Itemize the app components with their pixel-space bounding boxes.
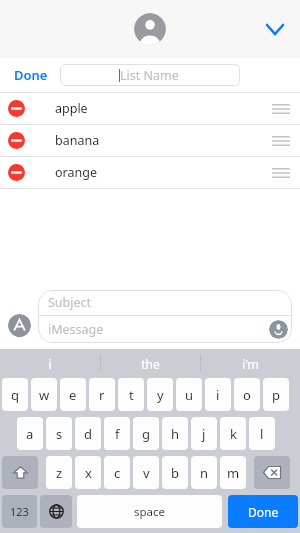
- staticText: the: [141, 356, 160, 372]
- button[interactable]: the: [101, 349, 200, 378]
- button[interactable]: z: [46, 456, 72, 489]
- button[interactable]: p: [263, 378, 289, 411]
- staticText: u: [185, 386, 194, 404]
- button[interactable]: l: [249, 417, 275, 450]
- button[interactable]: Apps: [8, 314, 31, 337]
- button[interactable]: Backspace: [254, 456, 290, 489]
- staticText: 123: [10, 504, 29, 519]
- button[interactable]: Shift: [2, 456, 38, 489]
- staticText: i: [216, 386, 220, 404]
- button[interactable]: Subject: [38, 290, 292, 343]
- button[interactable]: q: [2, 378, 28, 411]
- staticText: e: [69, 386, 77, 404]
- button[interactable]: o: [234, 378, 260, 411]
- staticText: i: [48, 356, 52, 372]
- button[interactable]: Change keyboard: [40, 495, 72, 528]
- button[interactable]: 123: [2, 495, 37, 528]
- other: Reorder orange: [272, 166, 290, 180]
- button[interactable]: m: [220, 456, 246, 489]
- button[interactable]: d: [75, 417, 101, 450]
- staticText: z: [56, 464, 63, 482]
- staticText: d: [84, 425, 92, 443]
- button[interactable]: Collapse: [262, 16, 288, 42]
- staticText: j: [202, 425, 206, 443]
- button[interactable]: space: [77, 495, 222, 528]
- staticText: Done: [248, 504, 279, 520]
- staticText: k: [230, 425, 237, 443]
- button[interactable]: i: [205, 378, 231, 411]
- button[interactable]: Delete banana: [0, 125, 300, 156]
- button[interactable]: Delete apple: [8, 100, 25, 117]
- staticText: q: [11, 386, 19, 404]
- button[interactable]: Delete apple: [0, 93, 300, 124]
- staticText: m: [227, 464, 240, 482]
- button[interactable]: Dictate: [269, 320, 288, 339]
- staticText: n: [200, 464, 209, 482]
- button[interactable]: a: [17, 417, 43, 450]
- button[interactable]: g: [133, 417, 159, 450]
- button[interactable]: k: [220, 417, 246, 450]
- staticText: t: [129, 386, 134, 404]
- button[interactable]: v: [133, 456, 159, 489]
- staticText: a: [26, 425, 34, 443]
- button[interactable]: b: [162, 456, 188, 489]
- staticText: List Name: [120, 67, 179, 84]
- staticText: Done: [14, 66, 48, 84]
- button[interactable]: Delete orange: [0, 157, 300, 188]
- button[interactable]: r: [89, 378, 115, 411]
- staticText: h: [171, 425, 180, 443]
- staticText: banana: [55, 132, 100, 149]
- staticText: Subject: [48, 294, 92, 311]
- staticText: g: [142, 425, 150, 443]
- button[interactable]: Delete banana: [8, 132, 25, 149]
- staticText: x: [85, 464, 92, 482]
- staticText: o: [243, 386, 251, 404]
- button[interactable]: t: [118, 378, 144, 411]
- button[interactable]: Contact avatar: [134, 13, 166, 45]
- staticText: r: [99, 386, 105, 404]
- staticText: f: [115, 425, 120, 443]
- button[interactable]: e: [60, 378, 86, 411]
- staticText: l: [260, 425, 264, 443]
- staticText: w: [39, 386, 50, 404]
- button[interactable]: n: [191, 456, 217, 489]
- staticText: p: [272, 386, 280, 404]
- staticText: iMessage: [48, 321, 104, 338]
- button[interactable]: w: [31, 378, 57, 411]
- button[interactable]: c: [104, 456, 130, 489]
- button[interactable]: Done: [8, 62, 54, 88]
- staticText: y: [157, 386, 164, 404]
- staticText: b: [171, 464, 179, 482]
- button[interactable]: s: [46, 417, 72, 450]
- other: Reorder banana: [272, 134, 290, 148]
- staticText: i'm: [242, 356, 259, 372]
- button[interactable]: y: [147, 378, 173, 411]
- button[interactable]: x: [75, 456, 101, 489]
- button[interactable]: i'm: [201, 349, 300, 378]
- button[interactable]: j: [191, 417, 217, 450]
- button[interactable]: f: [104, 417, 130, 450]
- button[interactable]: List Name: [60, 64, 240, 86]
- staticText: space: [134, 504, 166, 520]
- staticText: s: [56, 425, 63, 443]
- button[interactable]: Done: [228, 495, 298, 528]
- button[interactable]: h: [162, 417, 188, 450]
- staticText: orange: [55, 164, 97, 181]
- button[interactable]: u: [176, 378, 202, 411]
- button[interactable]: Delete orange: [8, 164, 25, 181]
- staticText: apple: [55, 100, 88, 117]
- other: Reorder apple: [272, 102, 290, 116]
- staticText: c: [114, 464, 121, 482]
- staticText: v: [143, 464, 150, 482]
